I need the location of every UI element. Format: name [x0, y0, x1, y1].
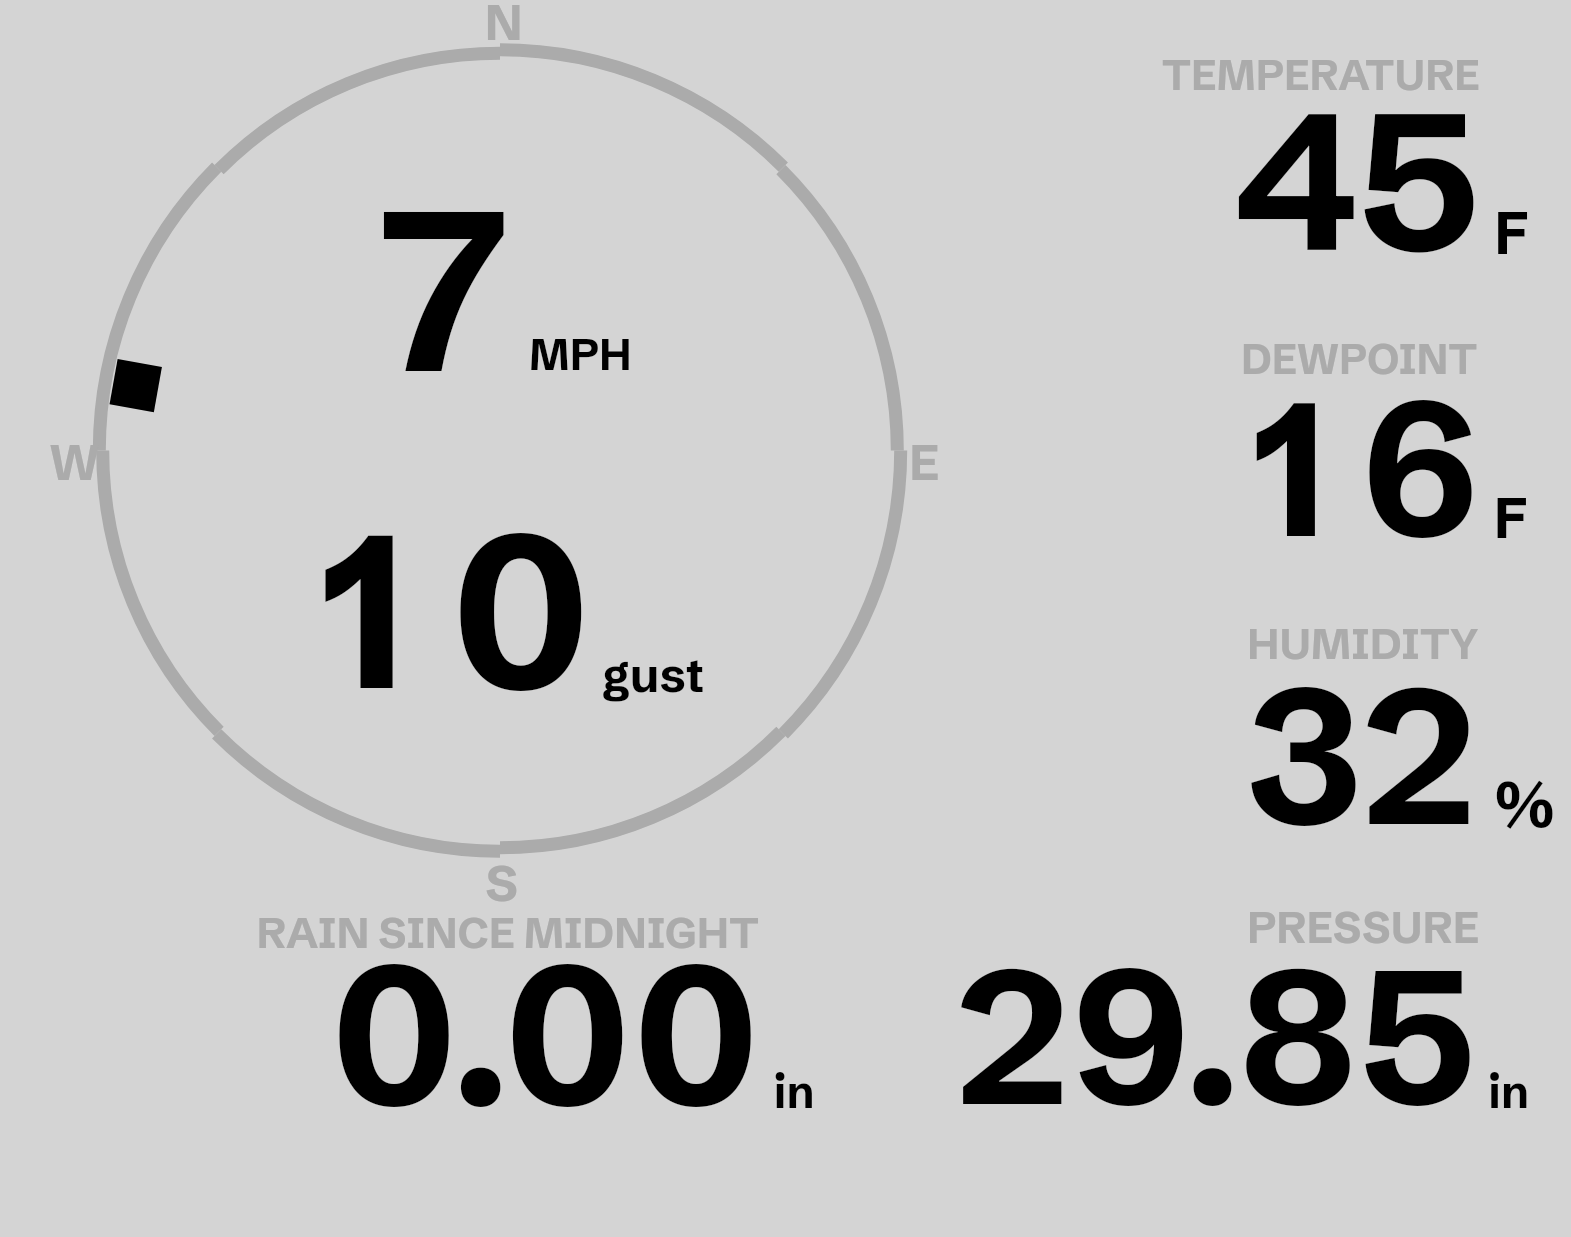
button[interactable]: Rain since midnight 0.00 in [230, 895, 830, 1145]
button[interactable]: Pressure 29.85 in [930, 895, 1550, 1145]
button[interactable]: Temperature 45 F [1100, 30, 1571, 310]
button[interactable]: Dewpoint 16 F [1100, 315, 1571, 595]
button[interactable]: Humidity 32 percent [1100, 600, 1571, 880]
button[interactable]: Wind speed and direction [60, 0, 940, 910]
